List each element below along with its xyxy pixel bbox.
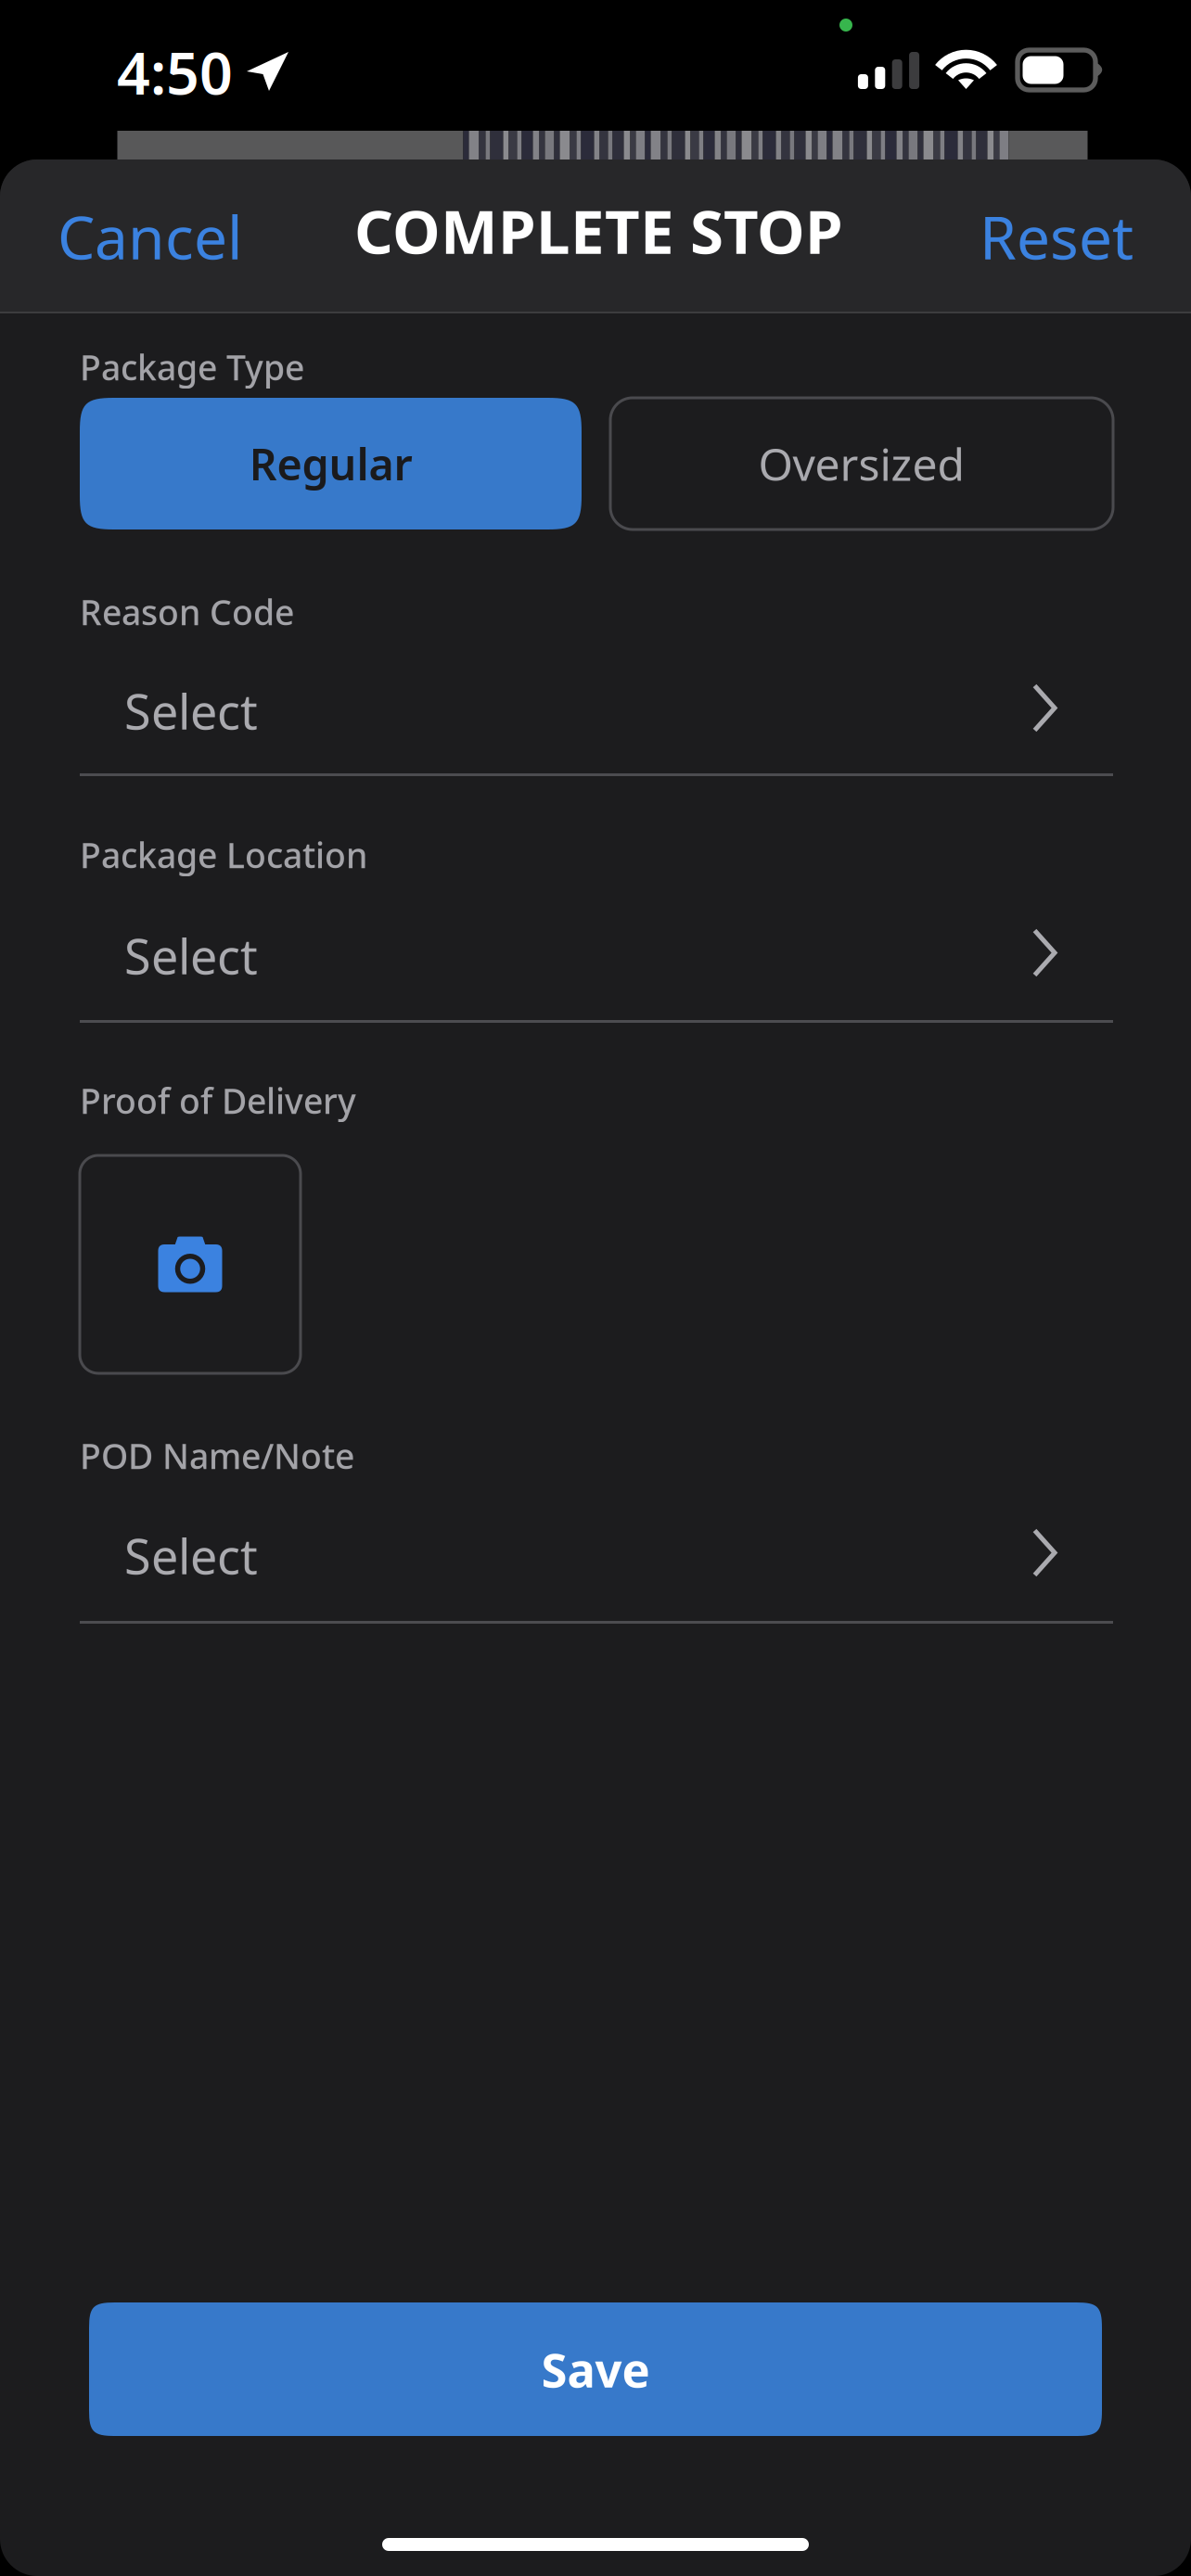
- staticText: Reset: [980, 197, 1133, 276]
- staticText: Package Type: [80, 344, 304, 390]
- button[interactable]: Select: [80, 894, 1113, 1023]
- staticText: COMPLETE STOP: [354, 190, 843, 271]
- button[interactable]: Regular: [80, 398, 582, 529]
- button[interactable]: Reset: [928, 159, 1133, 313]
- button[interactable]: Cancel: [58, 159, 273, 313]
- staticText: Proof of Delivery: [80, 1078, 356, 1123]
- staticText: Reason Code: [80, 589, 294, 635]
- staticText: Select: [124, 679, 258, 743]
- button[interactable]: Select: [80, 1494, 1113, 1624]
- staticText: Regular: [249, 435, 412, 492]
- staticText: Select: [124, 924, 258, 988]
- button[interactable]: Save: [89, 2302, 1102, 2436]
- staticText: Select: [124, 1524, 258, 1588]
- staticText: Save: [541, 2338, 650, 2400]
- staticText: POD Name/Note: [80, 1433, 354, 1479]
- button[interactable]: Oversized: [610, 398, 1113, 529]
- button[interactable]: Take photo: [80, 1155, 301, 1373]
- staticText: Oversized: [758, 434, 965, 493]
- staticText: Cancel: [58, 197, 243, 276]
- staticText: 4:50: [117, 33, 233, 111]
- staticText: Package Location: [80, 832, 367, 878]
- button[interactable]: Select: [80, 649, 1113, 776]
